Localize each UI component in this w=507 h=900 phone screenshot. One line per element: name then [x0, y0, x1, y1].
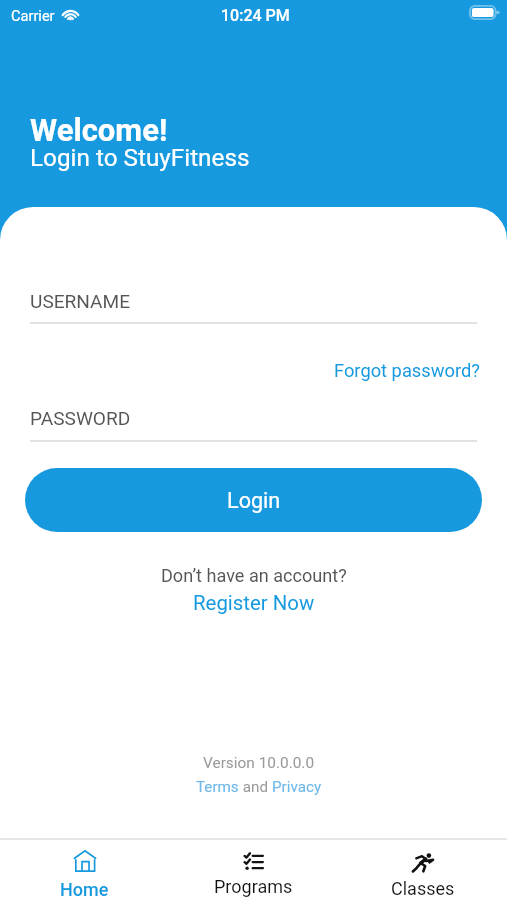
staticText: Terms [196, 778, 239, 796]
other: Programs [244, 853, 264, 871]
staticText: USERNAME [30, 290, 131, 312]
button[interactable]: Programs [169, 840, 338, 897]
other: Battery full [469, 5, 501, 20]
staticText: Login [227, 488, 281, 513]
button[interactable]: Forgot password? [330, 360, 484, 381]
staticText: Welcome! [30, 112, 168, 148]
staticText: 10:24 PM [221, 6, 290, 25]
staticText: Carrier [11, 7, 55, 24]
button[interactable]: Home [0, 840, 169, 900]
staticText: Home [60, 879, 109, 900]
button[interactable]: Terms [196, 778, 239, 796]
staticText: Login to StuyFitness [30, 143, 250, 171]
staticText: Privacy [272, 778, 322, 796]
button[interactable]: Register Now [189, 591, 319, 615]
staticText: Programs [214, 876, 293, 897]
staticText: Don’t have an account? [161, 565, 347, 586]
staticText: Version 10.0.0.0 [203, 754, 315, 772]
staticText: Register Now [193, 591, 315, 615]
other: Wi-Fi signal [61, 6, 80, 21]
staticText: Classes [391, 878, 455, 899]
button[interactable]: Classes [338, 840, 507, 899]
button[interactable]: Login [25, 468, 482, 532]
staticText: Forgot password? [334, 360, 480, 381]
button[interactable]: Privacy [272, 778, 322, 796]
staticText: PASSWORD [30, 407, 131, 429]
other: Classes [412, 853, 434, 873]
other: Home [73, 850, 97, 872]
staticText: and [239, 778, 272, 796]
